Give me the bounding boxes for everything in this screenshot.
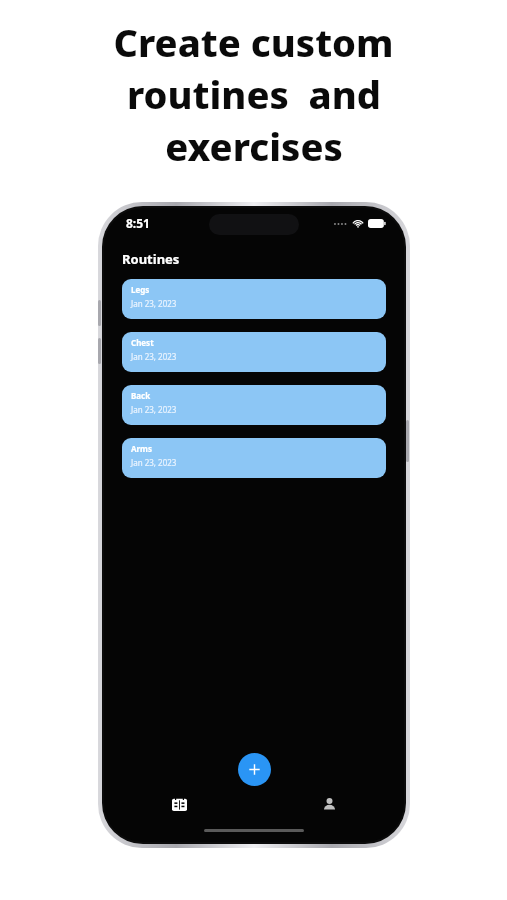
staticText: Jan 23, 2023	[131, 298, 177, 309]
button[interactable]: Arms	[122, 438, 386, 478]
staticText: routines and	[127, 68, 381, 120]
staticText: Back	[131, 390, 151, 401]
staticText: exercises	[165, 120, 343, 172]
button[interactable]: Add routine	[238, 753, 271, 786]
button[interactable]: Profile	[254, 791, 404, 817]
button[interactable]: Back	[122, 385, 386, 425]
button[interactable]: Routines	[104, 791, 254, 817]
staticText: Jan 23, 2023	[131, 457, 177, 468]
staticText: Chest	[131, 337, 154, 348]
button[interactable]: Legs	[122, 279, 386, 319]
staticText: Arms	[131, 443, 152, 454]
staticText: Jan 23, 2023	[131, 404, 177, 415]
staticText: Routines	[122, 250, 180, 268]
staticText: Jan 23, 2023	[131, 351, 177, 362]
staticText: Create custom	[113, 16, 394, 68]
button[interactable]: Chest	[122, 332, 386, 372]
staticText: 8:51	[126, 215, 150, 231]
staticText: Legs	[131, 284, 150, 295]
